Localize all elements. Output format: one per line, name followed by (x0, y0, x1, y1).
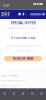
button[interactable]: Toolbar button (28, 88, 37, 99)
button[interactable]: Toolbar button (18, 88, 28, 99)
button[interactable]: Tab count (1, 11, 10, 17)
staticText: VOUCHER CODE (14, 36, 35, 39)
button[interactable]: Toolbar button (37, 88, 46, 99)
button[interactable]: Toolbar button (0, 88, 9, 99)
staticText: One per customer (1, 84, 19, 87)
staticText: SPECIAL OFFER (10, 21, 35, 25)
button[interactable]: REDEEM NOW (4, 56, 42, 61)
button[interactable]: More (42, 13, 45, 15)
staticText: 9:41 (2, 2, 9, 8)
button[interactable]: Toolbar button (9, 88, 18, 99)
staticText: Offer valid while stocks last (1, 79, 26, 82)
staticText: 341 (1, 11, 10, 17)
staticText: Limited time only for members (8, 27, 37, 29)
staticText: on your order (16, 49, 29, 52)
staticText: REDEEM NOW (12, 57, 33, 61)
button[interactable]: Address field (30, 13, 41, 15)
staticText: Terms & conditions (1, 74, 18, 77)
staticText: Apply this code during checkout to save (5, 44, 41, 47)
